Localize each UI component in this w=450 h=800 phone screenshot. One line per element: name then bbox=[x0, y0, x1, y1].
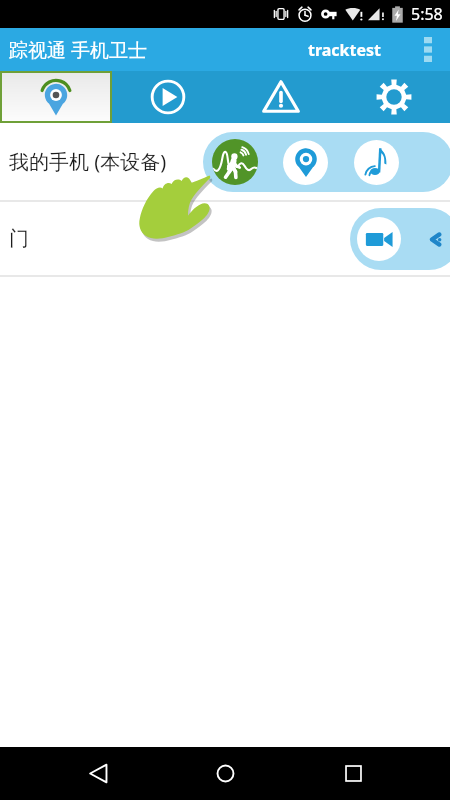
button[interactable]: Back bbox=[68, 747, 128, 800]
staticText: 门 bbox=[9, 226, 29, 251]
button[interactable]: More options bbox=[406, 28, 450, 71]
button[interactable]: Home bbox=[195, 747, 255, 800]
button[interactable]: 门 bbox=[0, 202, 450, 275]
button[interactable]: Settings bbox=[337, 71, 450, 123]
staticText: 我的手机 (本设备) bbox=[9, 148, 167, 175]
staticText: tracktest bbox=[308, 39, 382, 61]
button[interactable]: Track person bbox=[212, 139, 258, 185]
button[interactable]: Locate bbox=[283, 140, 328, 185]
button[interactable]: Alerts bbox=[224, 71, 337, 123]
button[interactable]: 我的手机 (本设备) bbox=[0, 123, 450, 200]
button[interactable]: Video bbox=[357, 217, 401, 261]
button[interactable]: Play bbox=[112, 71, 224, 123]
button[interactable]: Track bbox=[2, 73, 110, 121]
staticText: 5:58 bbox=[411, 3, 443, 25]
button[interactable]: Recents bbox=[323, 747, 383, 800]
button[interactable]: Expand bbox=[429, 232, 442, 247]
staticText: 踪视通 手机卫士 bbox=[9, 37, 147, 63]
button[interactable]: Listen bbox=[354, 140, 399, 185]
